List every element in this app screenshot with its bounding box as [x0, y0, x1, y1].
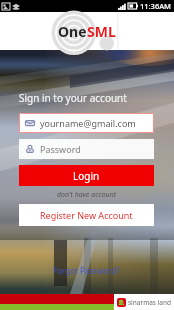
- staticText: Sign in to your account: [19, 91, 127, 105]
- button[interactable]: Login: [19, 165, 154, 186]
- button[interactable]: Forgot Password?: [53, 265, 120, 276]
- staticText: One: [58, 22, 87, 41]
- button[interactable]: Password: [25, 139, 150, 159]
- staticText: Forgot Password?: [53, 265, 120, 276]
- staticText: Login: [73, 169, 100, 183]
- staticText: yourname@gmail.com: [40, 117, 136, 129]
- button[interactable]: yourname@gmail.com: [25, 113, 150, 133]
- staticText: Register New Account: [40, 209, 133, 221]
- button[interactable]: Register New Account: [19, 204, 154, 226]
- staticText: sinarmas land: [128, 298, 172, 307]
- staticText: don't have account: [57, 190, 117, 200]
- staticText: Password: [40, 143, 81, 155]
- staticText: SML: [87, 22, 116, 41]
- staticText: 11:36AM: [140, 1, 171, 11]
